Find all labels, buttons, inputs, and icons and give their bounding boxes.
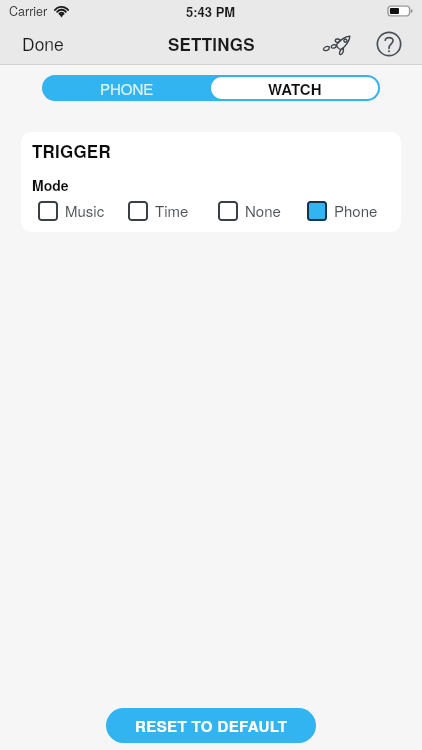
staticText: Time xyxy=(155,200,189,221)
button[interactable]: WATCH xyxy=(211,77,378,99)
button[interactable]: Time xyxy=(128,200,218,221)
button[interactable]: PHONE xyxy=(42,75,211,101)
staticText: RESET TO DEFAULT xyxy=(135,715,288,736)
staticText: PHONE xyxy=(100,78,154,99)
staticText: Phone xyxy=(334,200,378,221)
button[interactable]: RESET TO DEFAULT xyxy=(106,708,316,743)
staticText: Mode xyxy=(32,175,69,195)
staticText: None xyxy=(245,200,281,221)
button[interactable]: Launch xyxy=(324,27,358,61)
button[interactable]: Done xyxy=(14,25,72,62)
button[interactable]: None xyxy=(218,200,307,221)
staticText: Music xyxy=(65,200,105,221)
button[interactable]: Phone xyxy=(307,200,378,221)
button[interactable]: Help xyxy=(374,29,404,59)
staticText: SETTINGS xyxy=(168,32,255,56)
staticText: TRIGGER xyxy=(32,139,111,163)
staticText: 5:43 PM xyxy=(186,2,236,21)
button[interactable]: Music xyxy=(38,200,128,221)
staticText: WATCH xyxy=(268,78,322,99)
staticText: Carrier xyxy=(9,2,48,20)
staticText: Done xyxy=(22,31,64,56)
